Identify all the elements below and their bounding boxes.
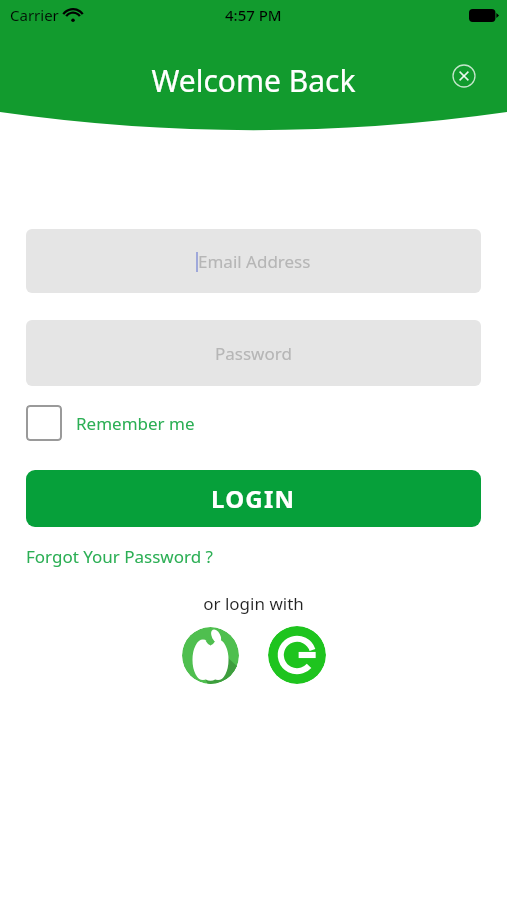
- staticText: Email Address: [198, 250, 311, 273]
- button[interactable]: Close: [446, 58, 482, 94]
- button[interactable]: Email Address: [26, 229, 481, 293]
- button[interactable]: Remember me: [26, 403, 195, 443]
- staticText: LOGIN: [211, 482, 296, 515]
- staticText: or login with: [203, 592, 304, 615]
- staticText: 4:57 PM: [225, 5, 282, 25]
- staticText: Forgot Your Password ?: [26, 545, 213, 568]
- staticText: Remember me: [76, 412, 195, 435]
- button[interactable]: Forgot Your Password ?: [26, 543, 213, 570]
- button[interactable]: LOGIN: [26, 470, 481, 527]
- staticText: Password: [215, 342, 292, 365]
- staticText: Welcome Back: [151, 60, 356, 101]
- staticText: Carrier: [10, 5, 59, 25]
- button[interactable]: Sign in with Google: [268, 626, 326, 684]
- button[interactable]: Password: [26, 320, 481, 386]
- button[interactable]: Sign in with Apple: [182, 627, 239, 684]
